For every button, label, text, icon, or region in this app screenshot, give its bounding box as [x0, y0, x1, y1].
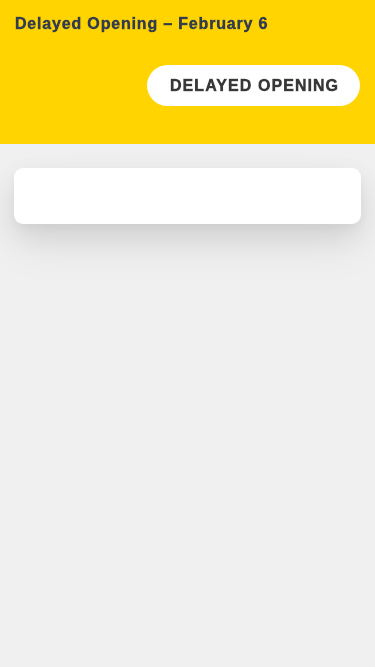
staticText: DELAYED OPENING: [170, 77, 340, 95]
button[interactable]: DELAYED OPENING: [147, 65, 360, 106]
staticText: Delayed Opening – February 6: [15, 15, 269, 33]
